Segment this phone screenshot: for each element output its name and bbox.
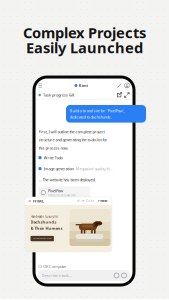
staticText: HTML xyxy=(33,198,44,204)
staticText: Describe a task... xyxy=(41,273,71,278)
staticText: PixelPaw xyxy=(48,188,63,193)
staticText: & Their Humans xyxy=(30,225,62,231)
staticText: ... The website has been deployed. xyxy=(38,177,95,182)
staticText: Kimi xyxy=(79,83,88,88)
button[interactable]: PixelPaw xyxy=(38,186,90,199)
staticText: structure and generating the to-do list … xyxy=(38,137,107,142)
button[interactable]: Menu xyxy=(38,82,45,89)
button[interactable]: Describe a task... xyxy=(37,270,130,281)
staticText: this process now. xyxy=(38,145,68,151)
staticText: Handmade Luxury for xyxy=(30,215,58,218)
button[interactable]: EXPLORE THE COLLECTION xyxy=(30,236,54,241)
staticText: Preview xyxy=(98,199,107,203)
staticText: Image generation xyxy=(43,166,73,171)
staticText: EXPLORE THE COLLECTION xyxy=(33,238,52,239)
button[interactable]: Share xyxy=(117,92,122,98)
button[interactable]: New chat xyxy=(117,83,122,88)
staticText: ↺ xyxy=(76,199,79,203)
button[interactable]: Expand xyxy=(124,92,129,98)
staticText: OK Computer xyxy=(43,264,67,269)
button[interactable]: Account xyxy=(124,83,129,88)
staticText: Code xyxy=(86,199,94,203)
staticText: Easily Launched xyxy=(26,38,143,57)
staticText: https://pixelpaw.site xyxy=(48,194,76,197)
staticText: Megapixel quality fo… xyxy=(75,166,112,171)
staticText: dedicated to dachshunds. xyxy=(69,114,111,120)
staticText: Dachshunds xyxy=(30,219,56,225)
staticText: Write Todo xyxy=(43,155,62,160)
staticText: Task progress 6/4 xyxy=(43,92,74,98)
staticText: First, I will outline the complete proje… xyxy=(38,129,104,134)
staticText: ⟳ xyxy=(81,199,84,203)
staticText: Complex Projects xyxy=(23,23,146,42)
staticText: ✕ xyxy=(28,199,31,203)
staticText: Build a brand site for 'PixelPaw', xyxy=(69,108,124,113)
